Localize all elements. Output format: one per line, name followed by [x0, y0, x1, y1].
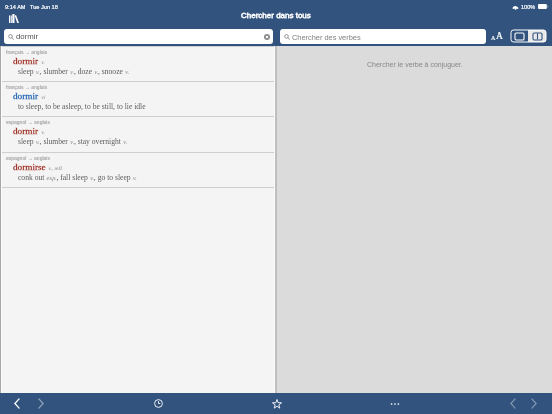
- staticText: Chercher des verbes: [292, 33, 361, 41]
- staticText: dormir: [13, 126, 39, 136]
- staticText: Chercher le verbe à conjuguer.: [367, 61, 463, 69]
- staticText: Chercher dans tous: [241, 11, 311, 20]
- staticText: A: [496, 31, 503, 42]
- staticText: français → anglais: [6, 84, 48, 90]
- staticText: A: [491, 35, 496, 42]
- button[interactable]: français → anglais: [0, 46, 274, 81]
- staticText: sleep v., slumber v., doze v., snooze v.: [18, 67, 129, 75]
- button[interactable]: espagnol → anglais: [0, 152, 274, 188]
- button[interactable]: Affichage simple: [511, 30, 528, 42]
- button[interactable]: Chercher des verbes: [280, 29, 486, 44]
- staticText: to sleep, to be asleep, to be still, to …: [18, 102, 146, 110]
- staticText: 100%: [521, 4, 536, 10]
- staticText: v.: [41, 59, 45, 65]
- button[interactable]: français → anglais: [0, 81, 274, 116]
- button[interactable]: Affichage double: [528, 30, 546, 42]
- staticText: dormirse: [13, 162, 46, 172]
- button[interactable]: Favoris: [268, 395, 285, 412]
- staticText: vi: [41, 94, 46, 100]
- staticText: français → anglais: [6, 49, 48, 55]
- staticText: conk out exp., fall sleep v., go to slee…: [18, 173, 137, 181]
- button[interactable]: dormir: [4, 29, 273, 44]
- button[interactable]: Suivant: [32, 395, 49, 412]
- staticText: v., refl.: [48, 165, 63, 171]
- button[interactable]: Page précédente: [504, 395, 521, 412]
- staticText: espagnol → anglais: [6, 119, 50, 125]
- staticText: v.: [41, 129, 45, 135]
- button[interactable]: espagnol → anglais: [0, 116, 274, 151]
- button[interactable]: Taille du texte: [491, 29, 503, 43]
- staticText: 9:14 AM: [5, 4, 26, 10]
- staticText: espagnol → anglais: [6, 155, 50, 161]
- button[interactable]: Plus: [386, 395, 403, 412]
- staticText: sleep v., slumber v., stay overnight v.: [18, 137, 127, 145]
- button[interactable]: Page suivante: [525, 395, 542, 412]
- staticText: dormir: [13, 91, 39, 101]
- button[interactable]: Dictionnaires: [6, 11, 21, 26]
- button[interactable]: Précédent: [8, 395, 25, 412]
- staticText: dormir: [13, 56, 39, 66]
- button[interactable]: Historique: [150, 395, 167, 412]
- staticText: dormir: [16, 32, 39, 41]
- staticText: Tue Jun 18: [30, 4, 58, 10]
